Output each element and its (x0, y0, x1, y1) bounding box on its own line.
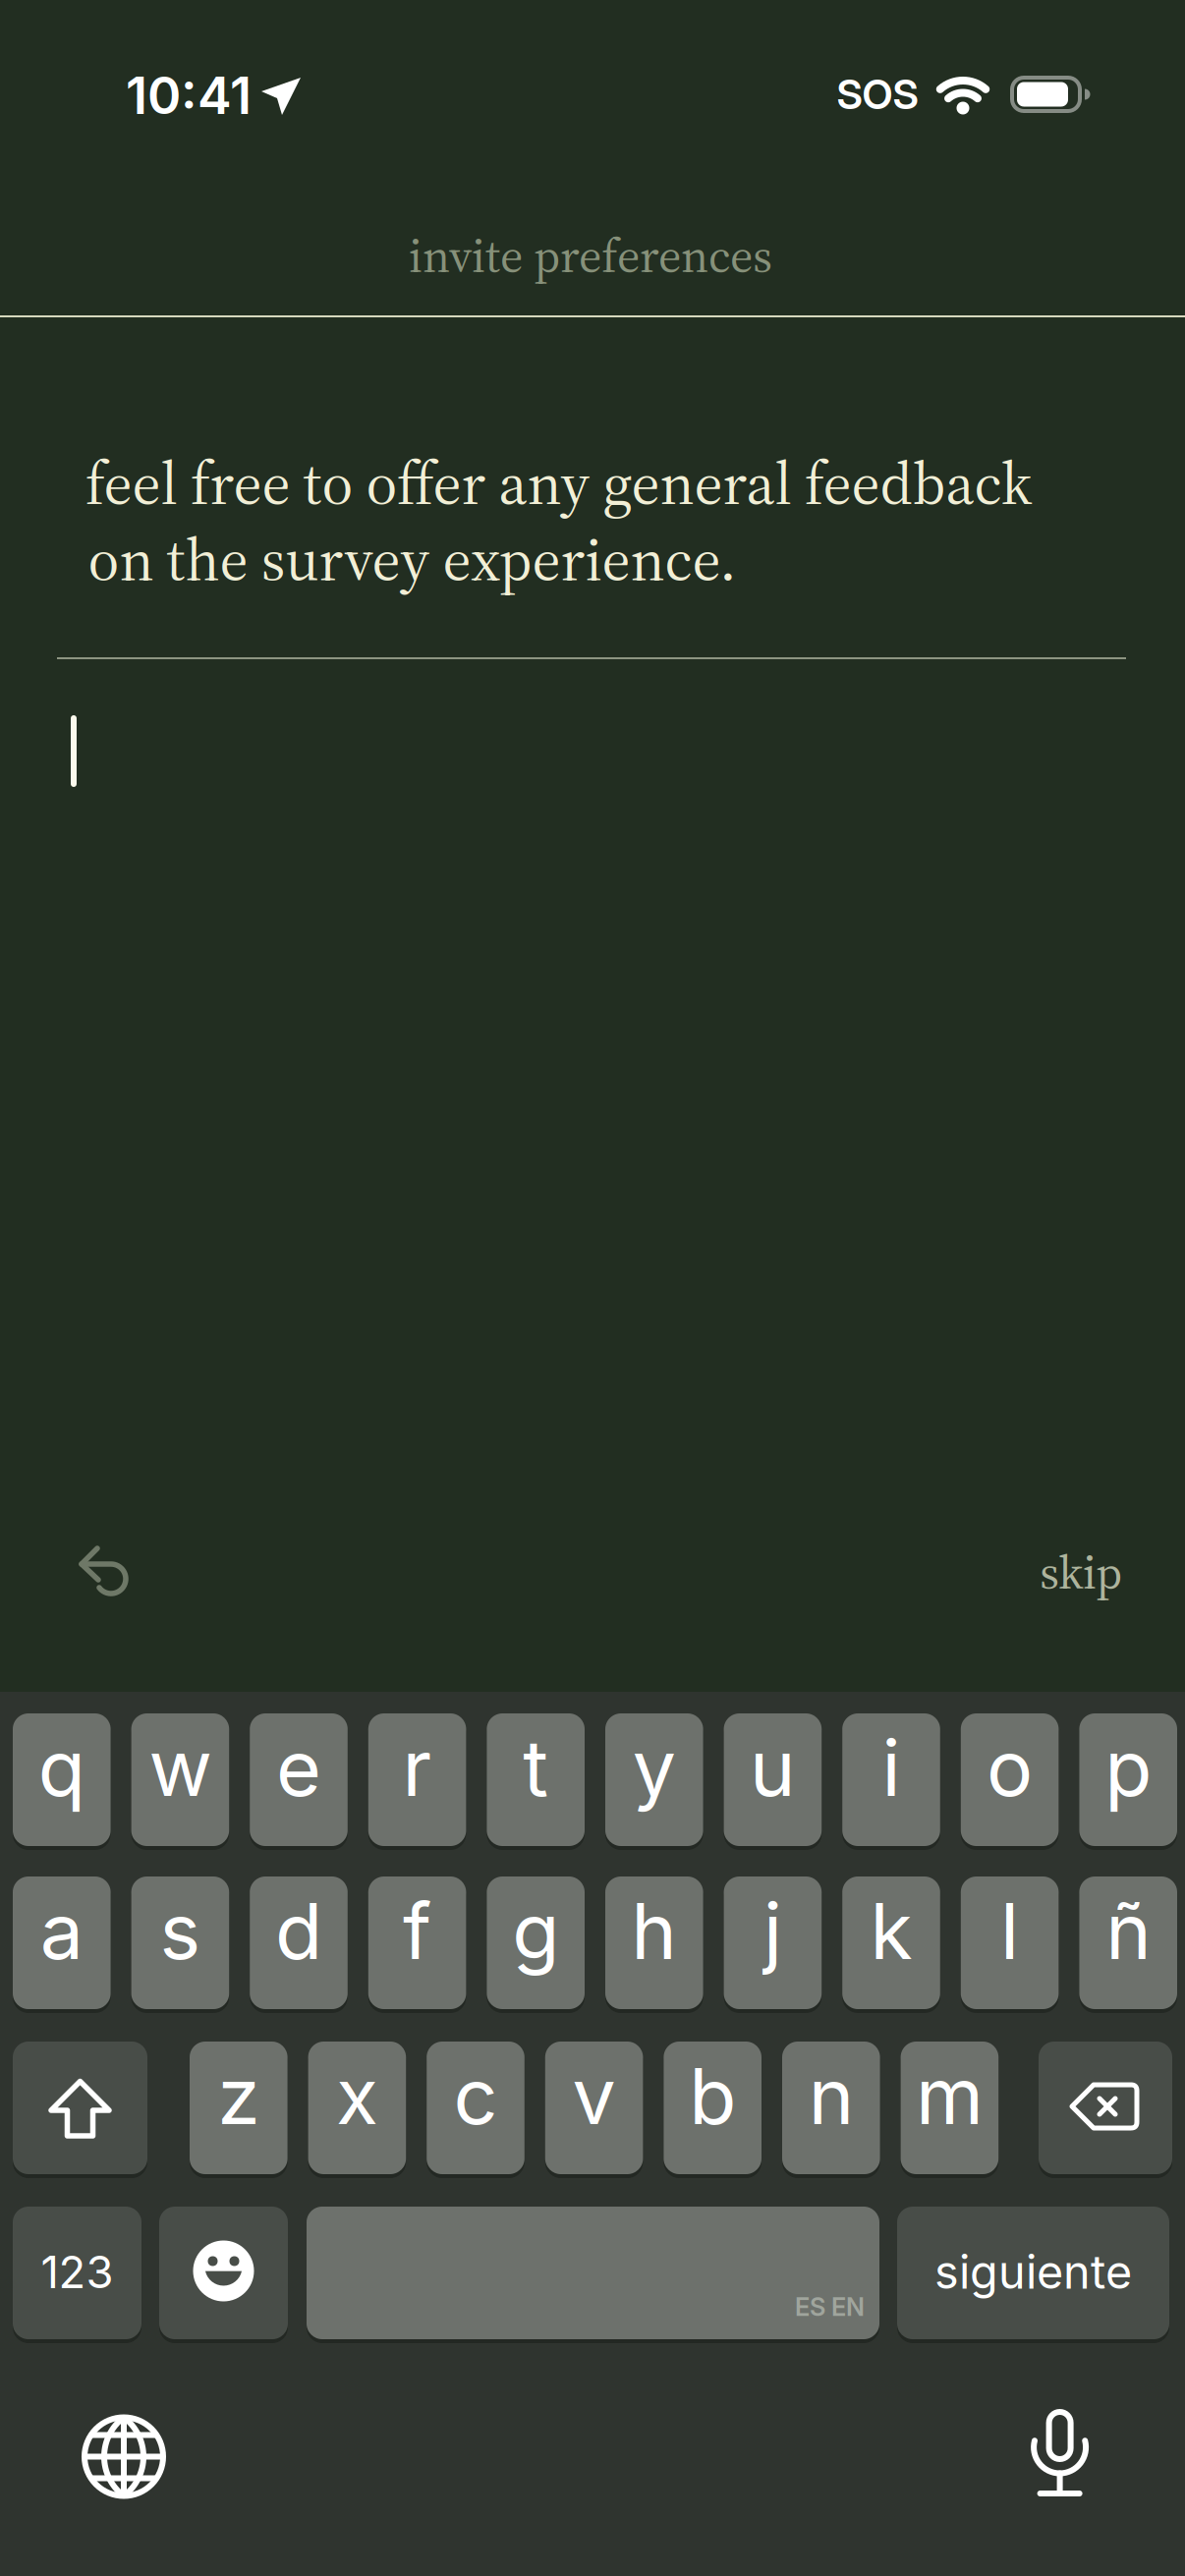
button[interactable]: a (13, 1875, 111, 2011)
staticText: on the survey experience. (88, 518, 736, 600)
staticText: u (750, 1721, 796, 1815)
button[interactable]: d (250, 1875, 348, 2011)
button[interactable]: g (487, 1875, 585, 2011)
button[interactable]: z (190, 2040, 288, 2176)
staticText: f (403, 1884, 431, 1978)
staticText: y (633, 1721, 676, 1815)
button[interactable]: Switch keyboard (77, 2409, 171, 2504)
staticText: invite preferences (409, 223, 772, 288)
staticText: SOS (837, 70, 918, 119)
staticText: a (40, 1884, 83, 1978)
button[interactable]: Delete (1039, 2040, 1172, 2176)
button[interactable]: ñ (1079, 1875, 1177, 2011)
staticText: feel free to offer any general feedback (85, 442, 1032, 524)
staticText: b (689, 2049, 736, 2143)
button[interactable]: b (664, 2040, 762, 2176)
button[interactable]: i (842, 1711, 940, 1848)
button[interactable]: siguiente (897, 2205, 1169, 2341)
staticText: ES EN (795, 2292, 865, 2322)
button[interactable]: Undo (60, 1528, 148, 1616)
button[interactable]: p (1079, 1711, 1177, 1848)
staticText: k (870, 1884, 912, 1978)
staticText: d (275, 1884, 322, 1978)
staticText: g (512, 1884, 559, 1978)
button[interactable]: q (13, 1711, 111, 1848)
button[interactable]: Emoji (159, 2205, 288, 2341)
staticText: v (572, 2049, 616, 2143)
staticText: ñ (1106, 1884, 1151, 1978)
staticText: r (402, 1721, 432, 1815)
button[interactable]: w (131, 1711, 229, 1848)
button[interactable]: r (368, 1711, 466, 1848)
button[interactable]: e (250, 1711, 348, 1848)
staticText: t (523, 1721, 548, 1815)
staticText: skip (1040, 1540, 1122, 1604)
staticText: j (763, 1884, 782, 1978)
staticText: n (808, 2049, 854, 2143)
button[interactable]: o (961, 1711, 1059, 1848)
button[interactable]: k (842, 1875, 940, 2011)
staticText: e (276, 1721, 321, 1815)
staticText: 123 (41, 2245, 113, 2299)
staticText: 10:41 (126, 64, 252, 126)
button[interactable]: h (605, 1875, 703, 2011)
staticText: z (217, 2049, 260, 2143)
staticText: siguiente (934, 2244, 1132, 2300)
button[interactable]: Dictate (1016, 2406, 1104, 2500)
button[interactable]: j (724, 1875, 822, 2011)
staticText: o (987, 1721, 1033, 1815)
button[interactable]: l (961, 1875, 1059, 2011)
staticText: c (453, 2049, 498, 2143)
staticText: l (1000, 1884, 1019, 1978)
button[interactable]: m (901, 2040, 999, 2176)
staticText: w (149, 1721, 212, 1815)
staticText: s (160, 1884, 201, 1978)
button[interactable]: Space (307, 2205, 879, 2341)
button[interactable]: 123 (13, 2205, 141, 2341)
button[interactable]: u (724, 1711, 822, 1848)
button[interactable]: v (545, 2040, 643, 2176)
staticText: h (631, 1884, 677, 1978)
button[interactable]: skip (1040, 1540, 1122, 1604)
button[interactable]: c (427, 2040, 525, 2176)
staticText: p (1105, 1721, 1152, 1815)
staticText: i (882, 1721, 901, 1815)
button[interactable]: s (131, 1875, 229, 2011)
staticText: x (336, 2049, 378, 2143)
staticText: m (916, 2049, 983, 2143)
button[interactable]: y (605, 1711, 703, 1848)
button[interactable]: Shift (13, 2040, 147, 2176)
button[interactable]: f (368, 1875, 466, 2011)
button[interactable]: t (487, 1711, 585, 1848)
staticText: q (38, 1721, 85, 1815)
button[interactable]: x (308, 2040, 406, 2176)
button[interactable]: n (782, 2040, 880, 2176)
